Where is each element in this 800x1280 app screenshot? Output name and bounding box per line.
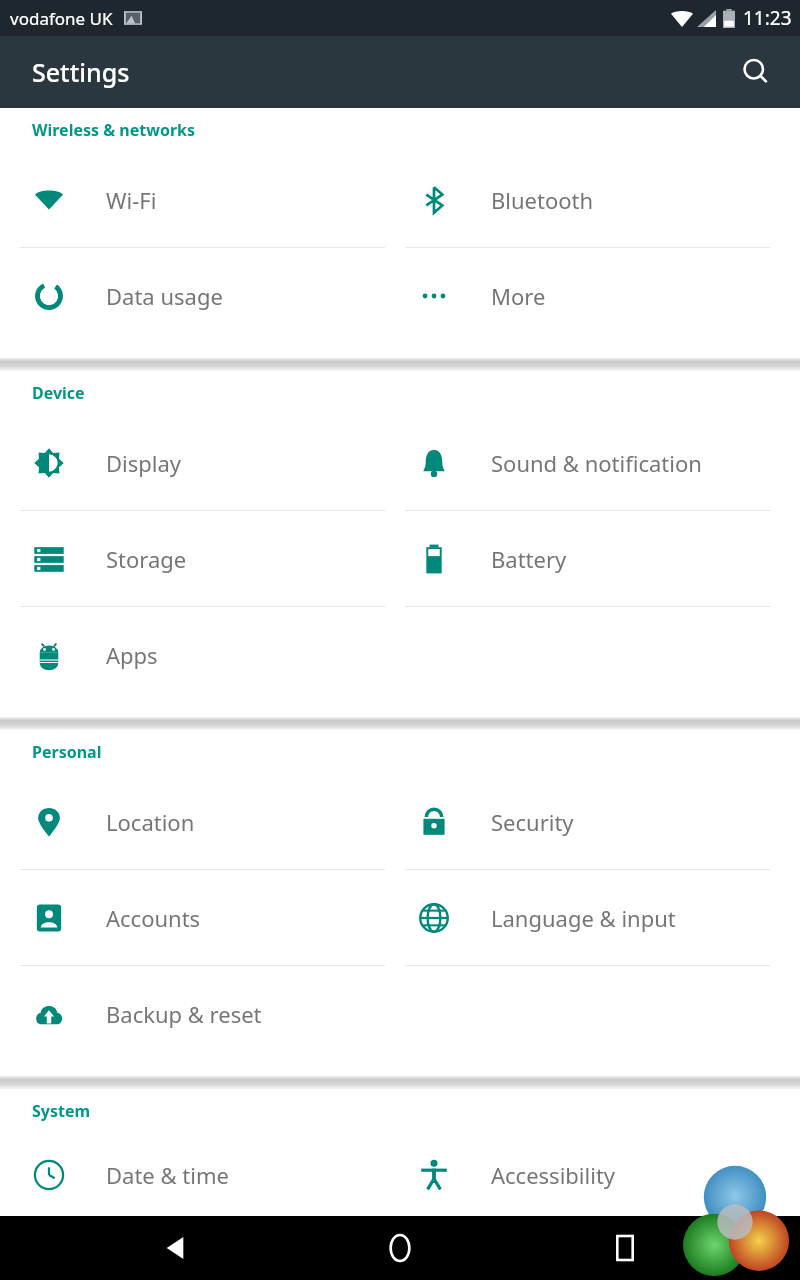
staticText: Device — [32, 382, 85, 404]
staticText: Display — [106, 448, 182, 478]
button[interactable]: Apps — [0, 607, 400, 703]
staticText: Bluetooth — [491, 185, 594, 215]
button[interactable]: Recent apps — [589, 1216, 661, 1280]
button[interactable]: Bluetooth — [400, 152, 800, 248]
button[interactable]: Location — [0, 774, 400, 870]
staticText: Language & input — [491, 903, 676, 933]
staticText: Wireless & networks — [32, 119, 196, 141]
button[interactable]: Accessibility — [400, 1133, 800, 1216]
button[interactable]: Display — [0, 415, 400, 511]
staticText: Wi-Fi — [106, 185, 157, 215]
staticText: Backup & reset — [106, 999, 262, 1029]
staticText: Location — [106, 807, 195, 837]
button[interactable]: Wi-Fi — [0, 152, 400, 248]
staticText: Settings — [32, 55, 130, 89]
button[interactable]: Data usage — [0, 248, 400, 344]
button[interactable]: Accounts — [0, 870, 400, 966]
button[interactable]: Sound & notification — [400, 415, 800, 511]
staticText: Accessibility — [491, 1160, 616, 1190]
staticText: Sound & notification — [491, 448, 702, 478]
staticText: 11:23 — [743, 5, 792, 31]
staticText: vodafone UK — [10, 7, 113, 30]
staticText: Date & time — [106, 1160, 229, 1190]
button[interactable]: Battery — [400, 511, 800, 607]
button[interactable]: More — [400, 248, 800, 344]
staticText: System — [32, 1100, 91, 1122]
staticText: Personal — [32, 741, 102, 763]
button[interactable]: Date & time — [0, 1133, 400, 1216]
staticText: Data usage — [106, 281, 223, 311]
button[interactable]: Search — [730, 46, 782, 98]
button[interactable]: Home — [364, 1216, 436, 1280]
staticText: Accounts — [106, 903, 201, 933]
button[interactable]: Backup & reset — [0, 966, 400, 1062]
button[interactable]: Security — [400, 774, 800, 870]
staticText: More — [491, 281, 546, 311]
button[interactable]: Language & input — [400, 870, 800, 966]
button[interactable]: Back — [139, 1216, 211, 1280]
staticText: Battery — [491, 544, 567, 574]
staticText: Apps — [106, 640, 158, 670]
button[interactable]: Storage — [0, 511, 400, 607]
staticText: Security — [491, 807, 574, 837]
staticText: Storage — [106, 544, 187, 574]
